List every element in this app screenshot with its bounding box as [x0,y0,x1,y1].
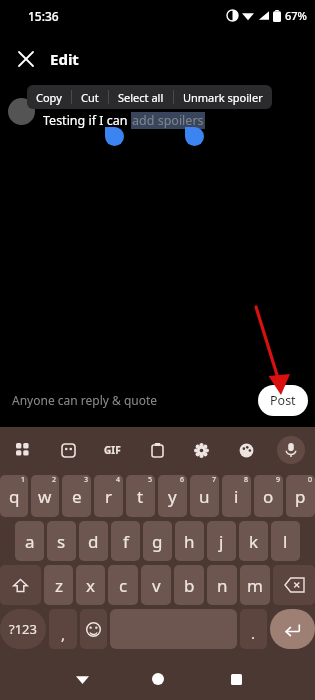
staticText: p [295,485,306,508]
button[interactable]: Unmark spoiler [174,85,272,109]
staticText: GIF [104,443,121,457]
button[interactable]: Shift [0,565,41,605]
staticText: i [234,485,239,508]
staticText: r [105,485,113,508]
staticText: h [184,530,195,553]
staticText: m [247,574,263,597]
staticText: 15:36 [28,8,59,24]
button[interactable]: Cut [72,85,108,109]
button[interactable]: u [190,475,219,517]
button[interactable]: Emoji [80,609,107,649]
staticText: 2 [52,475,57,485]
staticText: u [199,485,210,508]
button[interactable]: n [207,565,237,605]
staticText: e [72,485,82,508]
button[interactable]: Copy [27,85,71,109]
staticText: w [38,485,52,508]
staticText: Unmark spoiler [183,90,263,105]
button[interactable]: m [240,565,270,605]
staticText: l [283,530,288,553]
staticText: Copy [36,90,62,105]
button[interactable]: i [222,475,251,517]
staticText: t [137,485,144,508]
button[interactable]: Select all [109,85,173,109]
button[interactable]: o [254,475,283,517]
staticText: 67% [285,8,307,23]
staticText: . [251,623,256,643]
staticText: a [25,530,35,553]
staticText: g [152,530,163,553]
staticText: x [86,574,95,597]
button[interactable]: ?123 [0,609,46,649]
staticText: z [55,574,63,597]
button[interactable]: Apps [10,437,36,463]
button[interactable]: p [286,475,315,517]
staticText: 8 [244,475,249,485]
button[interactable]: Anyone can reply & quote [12,392,158,408]
button[interactable]: , [49,609,77,649]
button[interactable]: Voice input [277,436,305,464]
staticText: 9 [276,475,281,485]
button[interactable]: Back [66,663,98,695]
staticText: j [219,530,224,553]
staticText: o [263,485,274,508]
button[interactable]: c [108,565,138,605]
staticText: 0 [308,475,313,485]
button[interactable]: f [111,521,140,561]
staticText: c [119,574,128,597]
staticText: 1 [21,475,26,485]
staticText: Testing if I can [43,112,131,129]
staticText: 4 [116,475,121,485]
button[interactable]: h [175,521,204,561]
staticText: , [61,624,66,644]
button[interactable]: Post [258,385,308,416]
button[interactable]: Recents [220,663,252,695]
button[interactable]: j [207,521,236,561]
staticText: add spoilers [132,112,204,129]
staticText: Edit [50,49,79,69]
button[interactable]: Close [12,45,40,73]
button[interactable]: Clipboard [144,437,170,463]
staticText: Select all [118,90,164,105]
button[interactable]: y [158,475,187,517]
button[interactable]: r [94,475,123,517]
button[interactable]: g [143,521,172,561]
button[interactable]: x [76,565,105,605]
staticText: v [152,574,161,597]
staticText: q [9,485,20,508]
button[interactable]: l [271,521,300,561]
button[interactable]: q [0,475,28,517]
button[interactable]: Home [142,663,174,695]
button[interactable]: d [79,521,108,561]
button[interactable]: k [239,521,268,561]
button[interactable]: e [62,475,91,517]
staticText: k [249,530,259,553]
staticText: y [168,485,177,508]
button[interactable]: . [240,609,267,649]
staticText: 7 [212,475,217,485]
button[interactable]: t [126,475,155,517]
staticText: 5 [148,475,153,485]
button[interactable]: Enter [270,609,315,649]
button[interactable]: s [47,521,76,561]
staticText: d [88,530,99,553]
staticText: n [217,574,228,597]
button[interactable]: b [174,565,204,605]
staticText: b [184,574,195,597]
staticText: Post [270,392,296,409]
button[interactable]: GIF [99,437,125,463]
staticText: s [57,530,66,553]
staticText: Cut [81,90,99,105]
button[interactable]: z [44,565,73,605]
staticText: f [123,530,129,553]
staticText: 6 [180,475,185,485]
button[interactable]: Settings [188,437,214,463]
button[interactable]: a [15,521,44,561]
button[interactable]: Backspace [273,565,315,605]
button[interactable]: Theme [233,437,259,463]
button[interactable]: w [31,475,59,517]
button[interactable]: Stickers [55,437,81,463]
staticText: 3 [84,475,89,485]
button[interactable]: v [141,565,171,605]
